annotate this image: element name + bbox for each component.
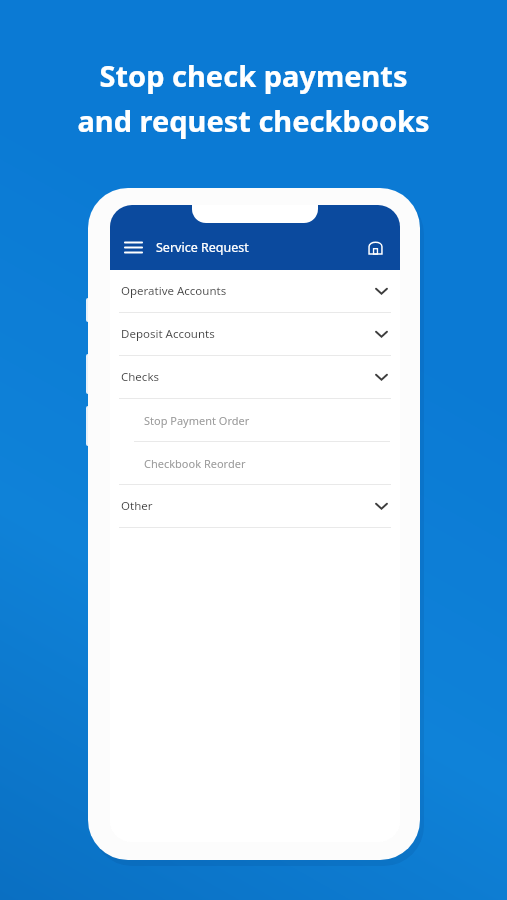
button[interactable]: Other [110,485,400,527]
staticText: Deposit Accounts [121,326,215,342]
staticText: Service Request [156,239,249,256]
staticText: Other [121,498,153,514]
button[interactable]: Open navigation menu [117,231,149,263]
staticText: Checkbook Reorder [144,456,246,471]
button[interactable]: Deposit Accounts [110,313,400,355]
button[interactable]: Stop Payment Order [110,399,400,441]
staticText: Checks [121,369,160,385]
button[interactable]: Checkbook Reorder [110,442,400,484]
staticText: Operative Accounts [121,283,227,299]
button[interactable]: Operative Accounts [110,270,400,312]
button[interactable]: Checks [110,356,400,398]
staticText: Stop Payment Order [144,413,250,428]
button[interactable]: Home [360,232,390,262]
staticText: Stop check payments [99,56,408,95]
staticText: and request checkbooks [77,101,430,140]
